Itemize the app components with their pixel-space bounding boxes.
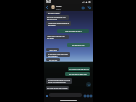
staticText: It's not cool for little guys [69, 73, 87, 75]
staticText: Hey more of get still like you [69, 68, 89, 70]
button[interactable]: Attach [86, 94, 89, 97]
staticText: I don't look [49, 49, 57, 51]
button[interactable]: I'm not an angel [46, 11, 61, 14]
staticText: you know [47, 37, 54, 39]
staticText: Why you want tell you ? [65, 30, 82, 32]
staticText: was beautiful [48, 55, 58, 57]
button[interactable]: It's strange to me [67, 43, 90, 47]
staticText: The most of the guys are like you [47, 87, 68, 89]
staticText: online [56, 8, 61, 10]
button[interactable]: Contact photo [51, 5, 55, 9]
button[interactable]: But you can be there? Me but if [46, 78, 72, 84]
button[interactable]: It's not cool [46, 58, 60, 61]
staticText: All the other things depend of [48, 22, 70, 24]
staticText: It's not cool [49, 59, 58, 61]
button[interactable]: It's not cool for little guys [65, 72, 90, 76]
staticText: I'm not an angel [48, 12, 60, 14]
button[interactable]: Video call [80, 4, 86, 11]
staticText: It said That I don't think this [48, 53, 68, 55]
button[interactable]: I really like. Search in you how [46, 35, 69, 39]
button[interactable]: Hey more of get still like you [68, 67, 90, 71]
button[interactable]: Call [86, 4, 92, 11]
button[interactable]: The most of the guys are like you [46, 86, 69, 90]
button[interactable]: Mom [56, 4, 78, 11]
button[interactable]: I don't look [46, 48, 59, 51]
button[interactable]: All the other things depend of [46, 21, 71, 26]
staticText: less be 200 kg [47, 18, 57, 20]
button[interactable]: It said That I don't think this [46, 52, 70, 57]
button[interactable]: Sticker [83, 94, 86, 97]
button[interactable]: Why you want tell you ? [57, 29, 89, 33]
button[interactable]: Back [44, 4, 49, 11]
button[interactable] [49, 93, 82, 97]
staticText: you're 170 I find you ugly [48, 81, 66, 83]
button[interactable]: and don't be less than 100 and [46, 15, 69, 20]
staticText: the person [48, 24, 56, 26]
staticText: It's strange to me [72, 44, 85, 46]
staticText: 9:41 [46, 0, 52, 4]
staticText: and don't be less than 100 and [47, 16, 68, 18]
staticText: Mom [56, 5, 62, 8]
staticText: I really like. Search in you how [47, 35, 68, 37]
button[interactable]: Scroll to bottom [86, 82, 91, 87]
button[interactable]: Camera [89, 94, 92, 97]
staticText: But you can be there? Me but if [48, 79, 70, 81]
button[interactable]: Apps [45, 94, 48, 97]
